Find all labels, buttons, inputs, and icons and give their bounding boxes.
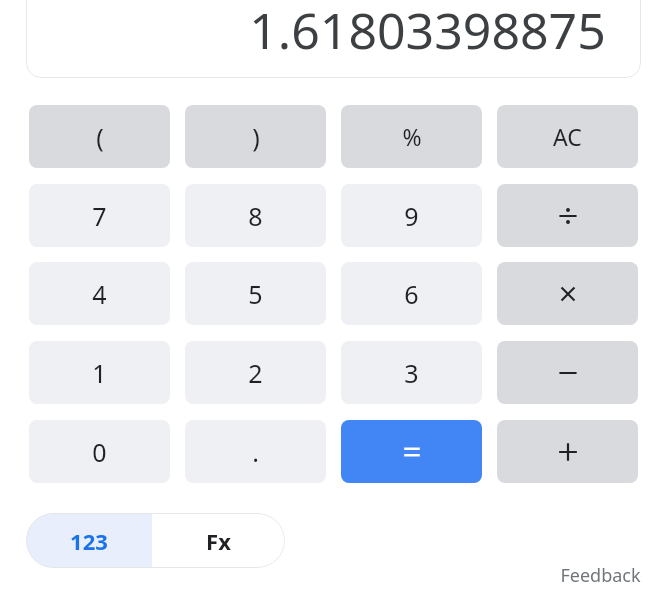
staticText: ): [252, 120, 260, 154]
staticText: AC: [553, 121, 582, 152]
button[interactable]: 2: [185, 341, 326, 404]
staticText: 0: [92, 435, 107, 469]
staticText: 8: [248, 199, 263, 233]
button[interactable]: 1: [29, 341, 170, 404]
button[interactable]: 7: [29, 184, 170, 247]
staticText: 7: [92, 199, 107, 233]
staticText: 4: [92, 277, 107, 311]
staticText: 6: [404, 277, 419, 311]
button[interactable]: Plus: [497, 420, 638, 483]
button[interactable]: 8: [185, 184, 326, 247]
button[interactable]: Divide: [497, 184, 638, 247]
button[interactable]: Multiply: [497, 262, 638, 325]
staticText: Feedback: [560, 563, 641, 588]
button[interactable]: .: [185, 420, 326, 483]
button[interactable]: 123: [26, 513, 152, 568]
button[interactable]: (: [29, 105, 170, 168]
staticText: Fx: [206, 526, 231, 556]
button[interactable]: 9: [341, 184, 482, 247]
staticText: (: [96, 120, 104, 154]
staticText: 5: [248, 277, 263, 311]
button[interactable]: %: [341, 105, 482, 168]
button[interactable]: Feedback: [530, 560, 641, 590]
button[interactable]: Minus: [497, 341, 638, 404]
staticText: .: [252, 435, 259, 469]
button[interactable]: Equals: [341, 420, 482, 483]
button[interactable]: ): [185, 105, 326, 168]
button[interactable]: Fx: [152, 513, 285, 568]
button[interactable]: 0: [29, 420, 170, 483]
button[interactable]: 1.61803398875: [26, 0, 641, 78]
staticText: 123: [70, 526, 108, 556]
button[interactable]: 5: [185, 262, 326, 325]
staticText: 1: [92, 356, 107, 390]
button[interactable]: 4: [29, 262, 170, 325]
staticText: 3: [404, 356, 419, 390]
button[interactable]: 3: [341, 341, 482, 404]
button[interactable]: 6: [341, 262, 482, 325]
staticText: 9: [404, 199, 419, 233]
staticText: 1.61803398875: [249, 0, 606, 64]
button[interactable]: AC: [497, 105, 638, 168]
staticText: %: [402, 121, 422, 152]
staticText: 2: [248, 356, 263, 390]
